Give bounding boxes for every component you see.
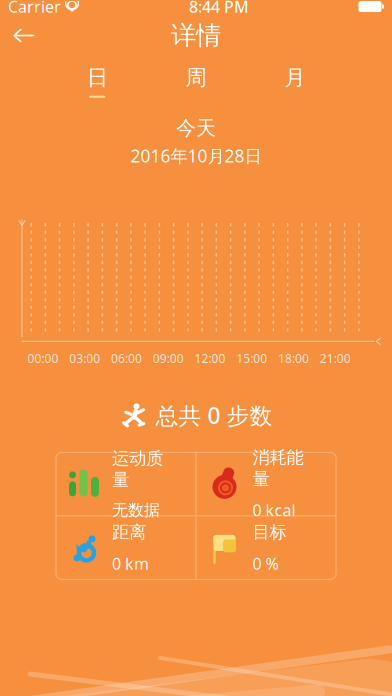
staticText: 目标 [252, 522, 286, 543]
staticText: 03:00 [69, 350, 100, 366]
staticText: 09:00 [153, 350, 184, 366]
button[interactable]: 运动质量 [56, 452, 195, 515]
staticText: 0 km [112, 553, 149, 574]
staticText: 今天 [176, 116, 216, 140]
staticText: 8:44 PM [189, 0, 249, 17]
staticText: 12:00 [194, 350, 225, 366]
staticText: 0 % [252, 553, 278, 574]
staticText: 06:00 [111, 350, 142, 366]
staticText: 周 [185, 64, 206, 91]
staticText: 消耗能量 [252, 447, 303, 490]
button[interactable]: 距离 [56, 516, 195, 579]
staticText: 2016年10月28日 [130, 144, 261, 167]
button[interactable]: 月 [245, 60, 344, 102]
staticText: 00:00 [27, 350, 58, 366]
staticText: 21:00 [320, 350, 351, 366]
staticText: 距离 [112, 522, 146, 543]
staticText: 无数据 [112, 500, 160, 520]
staticText: 0 kcal [252, 499, 295, 521]
staticText: 详情 [171, 20, 221, 51]
staticText: 月 [284, 64, 305, 91]
button[interactable]: 周 [147, 60, 245, 102]
staticText: 18:00 [278, 350, 309, 366]
staticText: Carrier [8, 0, 61, 17]
button[interactable]: 目标 [196, 516, 336, 579]
staticText: 运动质量 [112, 448, 163, 490]
staticText: 日 [87, 64, 108, 91]
button[interactable]: 日 [48, 60, 147, 102]
button[interactable]: Back [2, 17, 46, 53]
staticText: 15:00 [236, 350, 267, 366]
staticText: 总共 0 步数 [155, 400, 272, 430]
button[interactable]: 消耗能量 [196, 452, 336, 515]
